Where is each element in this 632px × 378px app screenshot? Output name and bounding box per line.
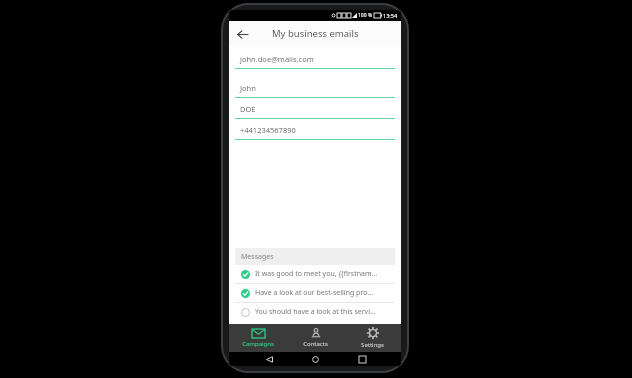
staticText: Campaigns: [242, 340, 274, 348]
button[interactable]: Campaigns: [229, 324, 287, 352]
staticText: John: [240, 83, 256, 93]
staticText: Settings: [361, 341, 384, 349]
button[interactable]: Back: [262, 352, 276, 366]
staticText: 100 %: [358, 12, 373, 19]
button[interactable]: +441234567890: [235, 120, 395, 140]
button[interactable]: DOE: [235, 99, 395, 119]
staticText: It was good to meet you, {{firstnam...: [255, 269, 378, 279]
button[interactable]: Back: [233, 25, 251, 43]
button[interactable]: Home: [308, 352, 322, 366]
staticText: You should have a look at this servi...: [255, 307, 376, 317]
staticText: Have a look at our best-selling pro...: [255, 288, 374, 298]
button[interactable]: john.doe@mails.com: [235, 49, 395, 69]
button[interactable]: It was good to meet you, {{firstnam...: [235, 265, 395, 283]
staticText: DOE: [240, 104, 256, 114]
button[interactable]: Contacts: [287, 324, 344, 352]
button[interactable]: You should have a look at this servi...: [235, 303, 395, 321]
button[interactable]: Recents: [355, 352, 369, 366]
staticText: +441234567890: [240, 125, 296, 135]
button[interactable]: Have a look at our best-selling pro...: [235, 284, 395, 302]
staticText: My business emails: [272, 27, 359, 40]
staticText: 13:54: [383, 12, 398, 19]
button[interactable]: John: [235, 78, 395, 98]
button[interactable]: Settings: [344, 324, 401, 352]
staticText: Contacts: [303, 340, 328, 348]
staticText: Messages: [241, 252, 274, 262]
staticText: john.doe@mails.com: [240, 54, 314, 64]
